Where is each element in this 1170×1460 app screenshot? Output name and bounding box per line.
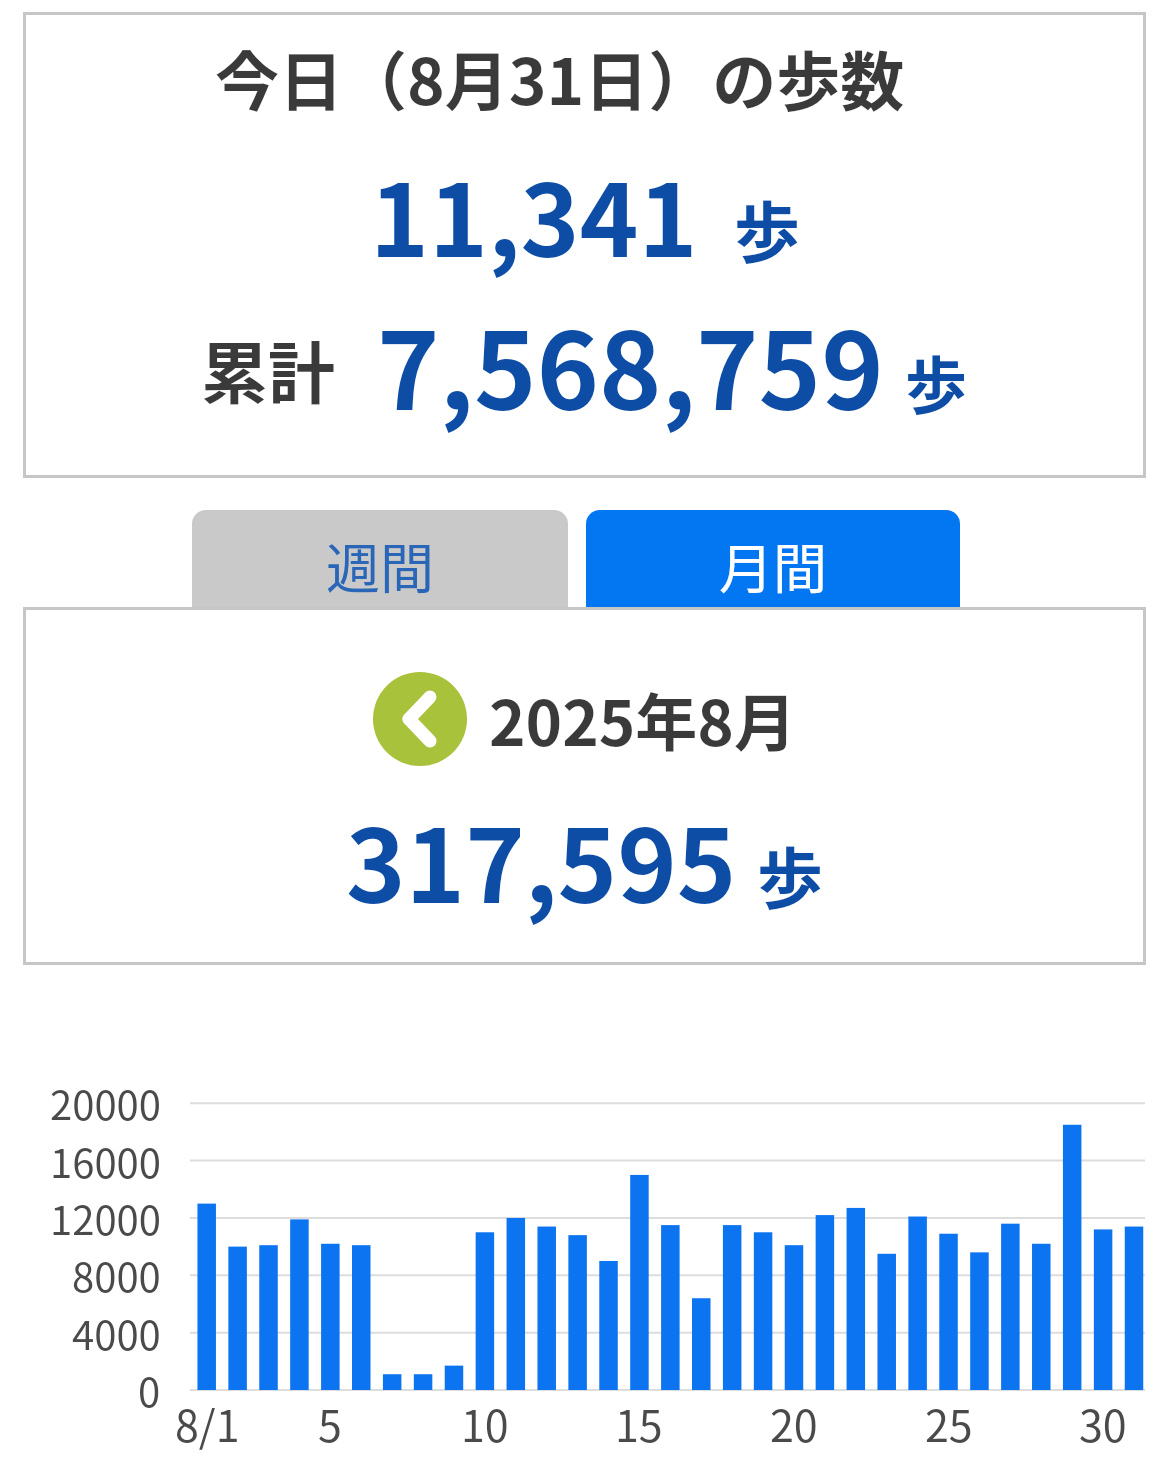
staticText: 317,595 xyxy=(346,786,737,932)
staticText: 歩 xyxy=(905,337,968,427)
staticText: 10 xyxy=(461,1392,509,1452)
staticText: 歩 xyxy=(734,180,800,276)
staticText: 週間 xyxy=(326,526,434,604)
staticText: 8/1 xyxy=(175,1392,240,1452)
staticText: 8000 xyxy=(72,1246,161,1304)
staticText: 15 xyxy=(615,1392,663,1452)
staticText: 累計 xyxy=(201,320,335,417)
staticText: 25 xyxy=(925,1392,973,1452)
staticText: 5 xyxy=(318,1392,342,1452)
staticText: 今日（8月31日）の歩数 xyxy=(215,31,905,124)
staticText: 16000 xyxy=(50,1132,161,1190)
staticText: 12000 xyxy=(50,1189,161,1247)
staticText: 月間 xyxy=(719,526,827,604)
button[interactable] xyxy=(373,672,467,766)
staticText: 20 xyxy=(770,1392,818,1452)
staticText: 30 xyxy=(1079,1392,1127,1452)
staticText: 4000 xyxy=(72,1304,161,1362)
staticText: 歩 xyxy=(757,826,823,922)
button[interactable]: 月間 xyxy=(586,510,960,607)
staticText: 20000 xyxy=(50,1074,161,1132)
staticText: 2025年8月 xyxy=(489,674,796,764)
staticText: 7,568,759 xyxy=(377,287,884,440)
staticText: 11,341 xyxy=(370,141,698,286)
button[interactable]: 週間 xyxy=(192,510,568,607)
staticText: 0 xyxy=(138,1361,161,1419)
